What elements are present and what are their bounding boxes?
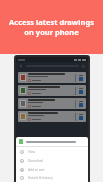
button[interactable] (18, 98, 86, 109)
button[interactable]: View (16, 147, 88, 156)
button[interactable] (18, 85, 86, 96)
button[interactable]: Add to cart (16, 165, 88, 174)
button[interactable]: Details & history (16, 174, 88, 182)
button[interactable]: Download (16, 156, 88, 165)
button[interactable] (18, 72, 86, 83)
staticText: Add to cart (28, 168, 45, 172)
button[interactable] (18, 111, 86, 122)
staticText: Access latest drawings on your phone (9, 17, 94, 37)
button[interactable] (16, 137, 88, 146)
staticText: View (28, 150, 35, 154)
staticText: Download (28, 159, 44, 163)
button[interactable]: Search (19, 62, 85, 70)
staticText: Details & history (28, 176, 53, 180)
